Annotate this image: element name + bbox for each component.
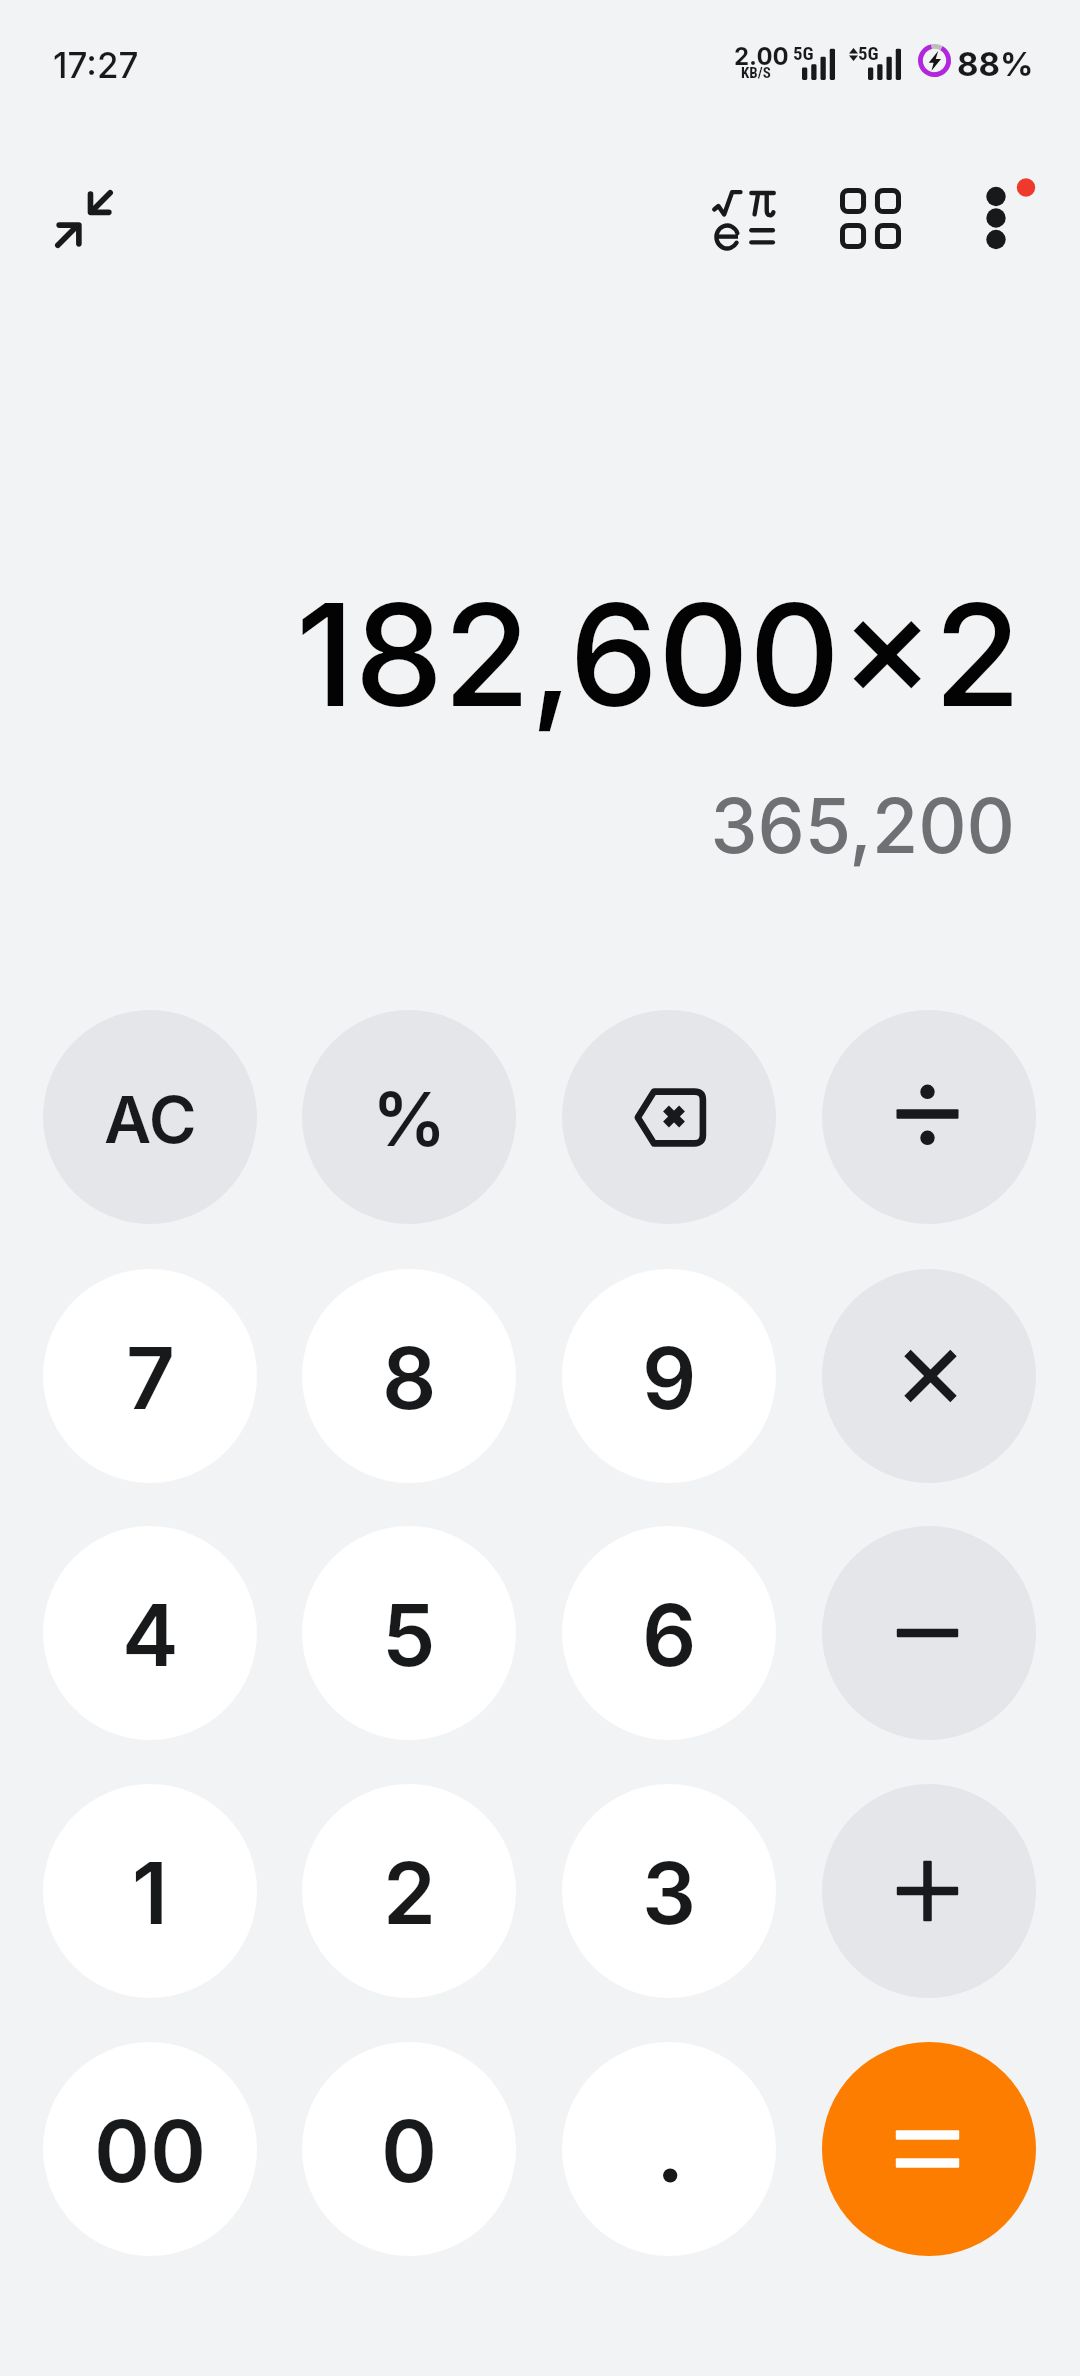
- staticText: 1: [132, 1842, 168, 1945]
- button[interactable]: Backspace: [562, 1010, 776, 1224]
- staticText: 365,200: [710, 780, 1015, 871]
- staticText: %: [372, 1074, 447, 1164]
- staticText: AC: [104, 1080, 197, 1159]
- staticText: 9: [642, 1327, 697, 1430]
- button[interactable]: Multiply: [822, 1269, 1036, 1483]
- staticText: 17:27: [53, 44, 139, 86]
- staticText: 5G: [858, 42, 879, 64]
- staticText: 5: [382, 1584, 436, 1687]
- button[interactable]: 00: [43, 2042, 257, 2256]
- staticText: 2.00: [734, 42, 789, 71]
- button[interactable]: Add: [822, 1784, 1036, 1998]
- button[interactable]: Subtract: [822, 1526, 1036, 1740]
- staticText: 88%: [957, 44, 1034, 84]
- staticText: 8: [382, 1327, 437, 1430]
- staticText: 182,600×2: [296, 569, 1021, 740]
- staticText: 00: [94, 2100, 207, 2203]
- staticText: KB/S: [741, 64, 771, 82]
- staticText: 6: [642, 1584, 697, 1687]
- button[interactable]: Converters: [810, 158, 930, 278]
- button[interactable]: Collapse: [24, 159, 144, 279]
- button[interactable]: Divide: [822, 1010, 1036, 1224]
- staticText: 3: [642, 1842, 697, 1945]
- button[interactable]: %: [302, 1010, 516, 1224]
- button[interactable]: Equals: [822, 2042, 1036, 2256]
- button[interactable]: Decimal point: [562, 2042, 776, 2256]
- staticText: 2: [383, 1842, 436, 1945]
- button[interactable]: AC: [43, 1010, 257, 1224]
- staticText: 4: [122, 1584, 179, 1687]
- button[interactable]: 6: [562, 1526, 776, 1740]
- button[interactable]: Scientific mode: [684, 160, 804, 280]
- button[interactable]: 4: [43, 1526, 257, 1740]
- button[interactable]: 5: [302, 1526, 516, 1740]
- staticText: 0: [381, 2100, 438, 2203]
- staticText: 5G: [793, 42, 814, 64]
- button[interactable]: 9: [562, 1269, 776, 1483]
- button[interactable]: More options: [936, 158, 1056, 278]
- staticText: 7: [126, 1327, 175, 1430]
- button[interactable]: 1: [43, 1784, 257, 1998]
- button[interactable]: 8: [302, 1269, 516, 1483]
- button[interactable]: 3: [562, 1784, 776, 1998]
- button[interactable]: 0: [302, 2042, 516, 2256]
- button[interactable]: 2: [302, 1784, 516, 1998]
- button[interactable]: 7: [43, 1269, 257, 1483]
